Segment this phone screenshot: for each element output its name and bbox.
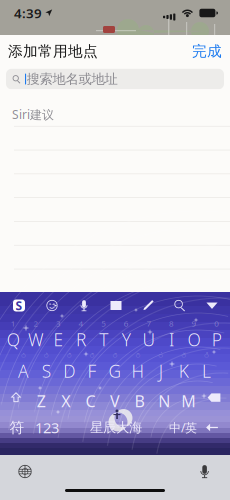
staticText: 6 [124, 318, 129, 329]
staticText: 星辰大海 [90, 419, 142, 436]
button[interactable]: Collapse keyboard [200, 293, 224, 317]
button[interactable]: 6 [115, 320, 138, 350]
staticText: 符 [9, 418, 24, 436]
staticText: M [181, 390, 196, 412]
button[interactable]: ̃ [126, 351, 149, 381]
staticText: O [188, 328, 201, 351]
staticText: S [15, 297, 22, 313]
staticText: S [42, 359, 51, 382]
staticText: Q [7, 328, 20, 351]
button[interactable]: Voice input [72, 293, 96, 317]
button[interactable] [152, 383, 176, 411]
button[interactable]: 1 [2, 320, 25, 350]
staticText: 搜索地名或地址 [27, 71, 118, 87]
button[interactable]: Handwriting [136, 293, 160, 317]
button[interactable]: 2 [25, 320, 47, 350]
button[interactable] [103, 383, 127, 411]
staticText: 3 [56, 318, 61, 329]
staticText: B [135, 390, 145, 412]
staticText: Siri建议 [12, 106, 54, 122]
button[interactable]: Shift [3, 383, 29, 411]
button[interactable]: Delete [201, 383, 227, 411]
staticText: W [28, 328, 44, 351]
button[interactable]: 中/英 [168, 414, 198, 440]
button[interactable]: Emoji [40, 293, 64, 317]
button[interactable]: Return [198, 414, 226, 440]
button[interactable]: 完成 [192, 42, 222, 60]
staticText: 8 [169, 318, 174, 329]
button[interactable] [54, 383, 78, 411]
button[interactable]: Clipboard [104, 293, 128, 317]
button[interactable]: 7 [138, 320, 160, 350]
button[interactable]: 123 [30, 414, 64, 440]
button[interactable]: Dictation [186, 454, 224, 488]
staticText: F [88, 359, 97, 382]
button[interactable]: 9 [183, 320, 205, 350]
button[interactable]: ̄ [104, 351, 126, 381]
button[interactable]: ́ [12, 351, 35, 381]
button[interactable]: 5 [92, 320, 115, 350]
staticText: 5 [101, 318, 106, 329]
button[interactable]: ̌ [81, 351, 104, 381]
button[interactable]: ̇ [149, 351, 172, 381]
staticText: 4:39 [14, 4, 42, 22]
staticText: A [18, 359, 29, 382]
button[interactable]: Sogou input menu [6, 292, 32, 318]
staticText: J [159, 359, 163, 382]
staticText: 2 [33, 318, 38, 329]
staticText: N [158, 390, 170, 412]
button[interactable] [78, 383, 103, 411]
button[interactable]: ̊ [195, 351, 218, 381]
staticText: Z [37, 390, 46, 412]
staticText: 完成 [192, 42, 222, 60]
staticText: G [108, 359, 121, 382]
staticText: Y [122, 328, 131, 351]
staticText: ̃ [135, 350, 140, 360]
staticText: 7 [146, 318, 151, 329]
staticText: C [85, 390, 95, 412]
button[interactable]: Switch keyboard [6, 454, 44, 488]
staticText: ̂ [67, 350, 72, 360]
staticText: R [76, 328, 86, 351]
staticText: 1 [11, 318, 16, 329]
staticText: T [99, 328, 108, 351]
staticText: ̆ [181, 350, 186, 360]
staticText: 4 [79, 318, 84, 329]
staticText: 123 [35, 418, 59, 437]
staticText: ̊ [204, 350, 209, 360]
staticText: 0 [214, 318, 219, 329]
staticText: V [110, 390, 120, 412]
staticText: X [61, 390, 70, 412]
staticText: ́ [21, 350, 26, 360]
staticText: ̀ [44, 350, 49, 360]
button[interactable]: 3 [47, 320, 70, 350]
staticText: ̄ [112, 350, 117, 360]
staticText: H [131, 359, 144, 382]
button[interactable]: ̂ [58, 351, 81, 381]
button[interactable]: 搜索地名或地址 [0, 69, 230, 89]
button[interactable]: 符 [4, 414, 30, 440]
button[interactable]: 4 [70, 320, 92, 350]
button[interactable] [29, 383, 54, 411]
staticText: 中/英 [169, 419, 197, 435]
staticText: E [53, 328, 63, 351]
button[interactable]: Search [168, 293, 192, 317]
staticText: ̇ [158, 350, 163, 360]
staticText: L [202, 359, 211, 382]
button[interactable] [127, 383, 152, 411]
staticText: ̌ [90, 350, 95, 360]
button[interactable]: 星辰大海 [64, 414, 168, 440]
staticText: P [212, 328, 222, 351]
staticText: D [63, 359, 75, 382]
staticText: K [179, 359, 189, 382]
button[interactable] [176, 383, 201, 411]
staticText: I [169, 328, 174, 351]
button[interactable]: ̆ [172, 351, 195, 381]
button[interactable]: 8 [160, 320, 183, 350]
staticText: 9 [192, 318, 197, 329]
button[interactable]: ̀ [35, 351, 58, 381]
staticText: U [142, 328, 155, 351]
button[interactable]: 0 [205, 320, 228, 350]
staticText: 添加常用地点 [8, 42, 98, 60]
